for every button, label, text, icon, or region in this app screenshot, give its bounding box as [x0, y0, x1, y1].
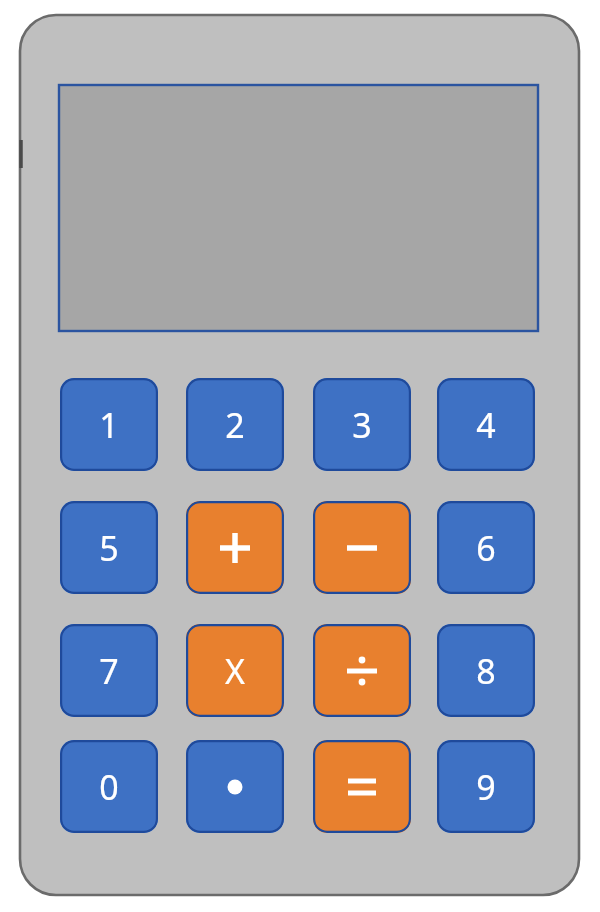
button[interactable]: X [186, 624, 284, 717]
staticText: 0 [99, 764, 119, 810]
staticText: 7 [99, 648, 119, 694]
button[interactable]: 3 [313, 378, 411, 471]
staticText: 1 [99, 402, 119, 448]
button[interactable]: Decimal point [186, 740, 284, 833]
button[interactable]: 7 [60, 624, 158, 717]
staticText: 3 [352, 402, 372, 448]
staticText: 4 [476, 402, 496, 448]
staticText: 9 [476, 764, 496, 810]
button[interactable]: 2 [186, 378, 284, 471]
staticText: X [225, 648, 245, 694]
button[interactable]: Equals [313, 740, 411, 833]
button[interactable]: Minus [313, 501, 411, 594]
staticText: 8 [476, 648, 496, 694]
button[interactable]: 4 [437, 378, 535, 471]
button[interactable]: 6 [437, 501, 535, 594]
button[interactable]: 1 [60, 378, 158, 471]
staticText: 6 [476, 525, 496, 571]
button[interactable]: 0 [60, 740, 158, 833]
button[interactable]: Divide [313, 624, 411, 717]
button[interactable]: 5 [60, 501, 158, 594]
button[interactable]: 8 [437, 624, 535, 717]
staticText: 2 [225, 402, 245, 448]
button[interactable]: 9 [437, 740, 535, 833]
button[interactable]: Plus [186, 501, 284, 594]
staticText: 5 [99, 525, 119, 571]
